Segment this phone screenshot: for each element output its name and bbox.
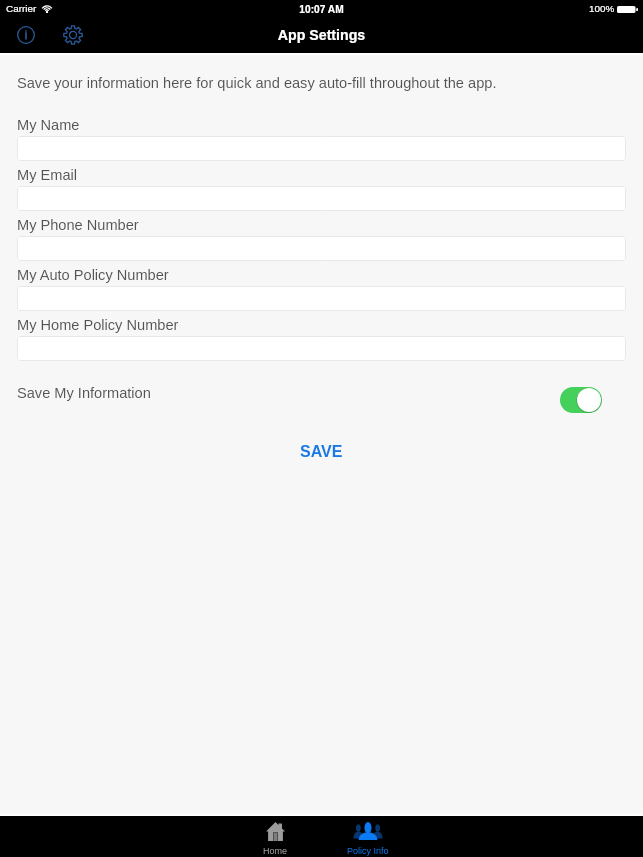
staticText: Policy Info <box>347 846 389 856</box>
staticText: 100% <box>589 3 615 14</box>
button[interactable]: SAVE <box>274 438 369 466</box>
staticText: SAVE <box>300 443 343 461</box>
button[interactable] <box>17 136 626 161</box>
button[interactable] <box>17 186 626 211</box>
staticText: My Email <box>17 167 77 183</box>
staticText: My Name <box>17 117 80 133</box>
button[interactable]: Settings <box>59 21 87 49</box>
button[interactable]: Save My Information <box>0 377 643 423</box>
button[interactable]: Info <box>12 21 40 49</box>
staticText: Carrier <box>6 3 37 14</box>
button[interactable] <box>17 336 626 361</box>
button[interactable]: Policy Info <box>322 816 413 857</box>
button[interactable] <box>17 286 626 311</box>
staticText: 10:07 AM <box>0 4 643 15</box>
button[interactable] <box>17 236 626 261</box>
staticText: My Home Policy Number <box>17 317 179 333</box>
staticText: Home <box>263 846 288 856</box>
staticText: App Settings <box>0 27 643 43</box>
staticText: My Phone Number <box>17 217 139 233</box>
staticText: My Auto Policy Number <box>17 267 169 283</box>
staticText: Save your information here for quick and… <box>17 75 497 91</box>
button[interactable]: Home <box>230 816 321 857</box>
staticText: Save My Information <box>17 385 151 401</box>
button[interactable]: Save My Information toggle <box>560 387 602 413</box>
